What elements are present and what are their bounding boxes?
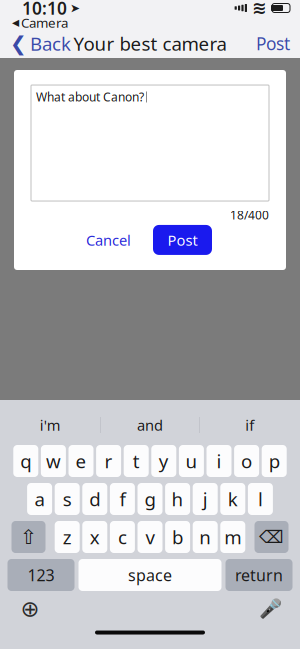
button[interactable]: j [193, 483, 218, 515]
staticText: e [75, 449, 86, 473]
staticText: ⇧ [20, 526, 37, 548]
button[interactable]: w [41, 445, 66, 477]
staticText: y [159, 449, 169, 473]
button[interactable]: ❮ [0, 28, 81, 58]
button[interactable]: 123 [7, 559, 74, 591]
staticText: h [172, 487, 184, 511]
button[interactable]: c [110, 521, 135, 553]
button[interactable]: space [78, 559, 221, 591]
staticText: i [216, 449, 221, 473]
staticText: ⊕ [20, 596, 39, 622]
staticText: l [258, 487, 263, 511]
button[interactable]: l [248, 483, 273, 515]
button[interactable]: if [200, 408, 300, 442]
staticText: ➤ [70, 1, 80, 15]
staticText: q [20, 449, 31, 473]
button[interactable]: d [82, 483, 107, 515]
staticText: g [144, 487, 155, 511]
staticText: Camera [21, 14, 68, 31]
staticText: b [172, 525, 183, 549]
staticText: Your best camera [73, 31, 226, 56]
button[interactable]: s [55, 483, 80, 515]
staticText: i'm [40, 415, 61, 435]
staticText: u [185, 449, 197, 473]
staticText: n [199, 525, 211, 549]
button[interactable]: p [262, 445, 287, 477]
button[interactable]: k [220, 483, 245, 515]
staticText: w [46, 449, 61, 473]
button[interactable]: o [234, 445, 259, 477]
staticText: ◀ [12, 17, 19, 28]
button[interactable]: v [137, 521, 162, 553]
button[interactable]: x [82, 521, 107, 553]
staticText: ≋ [252, 0, 267, 18]
staticText: 123 [27, 564, 54, 586]
staticText: space [128, 564, 172, 586]
staticText: t [133, 449, 140, 473]
staticText: j [203, 487, 208, 511]
button[interactable]: Dictate [250, 594, 290, 624]
staticText: What about Canon? [36, 89, 144, 105]
button[interactable]: e [68, 445, 93, 477]
button[interactable]: r [96, 445, 121, 477]
button[interactable]: m [220, 521, 245, 553]
button[interactable]: q [13, 445, 38, 477]
button[interactable]: Switch keyboard [10, 594, 50, 624]
staticText: 10:10 [22, 0, 67, 19]
staticText: f [119, 487, 125, 511]
staticText: m [224, 525, 241, 549]
button[interactable]: Delete [254, 521, 288, 553]
staticText: x [90, 525, 100, 549]
staticText: o [241, 449, 252, 473]
staticText: 🎤 [258, 598, 281, 620]
staticText: if [245, 415, 254, 435]
staticText: c [118, 525, 127, 549]
button[interactable]: n [193, 521, 218, 553]
staticText: Cancel [86, 230, 131, 250]
button[interactable]: i'm [0, 408, 100, 442]
button[interactable]: h [165, 483, 190, 515]
staticText: return [235, 564, 283, 586]
button[interactable]: y [151, 445, 176, 477]
button[interactable]: u [179, 445, 204, 477]
staticText: 18/400 [230, 207, 269, 223]
button[interactable]: return [225, 559, 292, 591]
staticText: ❮ [10, 32, 27, 55]
staticText: Post [167, 230, 197, 250]
staticText: p [269, 449, 280, 473]
staticText: d [89, 487, 100, 511]
staticText: a [35, 487, 45, 511]
button[interactable]: i [206, 445, 231, 477]
button[interactable]: a [27, 483, 52, 515]
staticText: Post [256, 32, 290, 55]
button[interactable]: b [165, 521, 190, 553]
staticText: v [145, 525, 154, 549]
staticText: k [228, 487, 238, 511]
button[interactable]: Post [153, 225, 212, 255]
button[interactable]: z [55, 521, 80, 553]
button[interactable]: and [101, 408, 199, 442]
staticText: ⌫ [259, 527, 284, 547]
button[interactable]: g [137, 483, 162, 515]
button[interactable]: Post [246, 28, 300, 58]
staticText: z [63, 525, 72, 549]
button[interactable]: f [110, 483, 135, 515]
staticText: and [137, 415, 163, 435]
button[interactable]: Cancel [76, 225, 141, 255]
button[interactable]: t [124, 445, 149, 477]
staticText: Back [30, 31, 71, 56]
button[interactable]: Shift [11, 521, 45, 553]
staticText: s [63, 487, 72, 511]
staticText: r [105, 449, 113, 473]
